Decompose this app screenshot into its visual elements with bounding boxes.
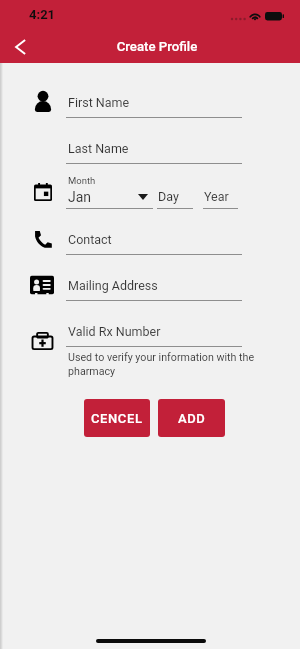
staticText: Create Profile [7,39,300,54]
staticText: Year [204,189,229,204]
staticText: Last Name [68,141,129,156]
button[interactable]: ADD [158,399,225,437]
button[interactable]: Last Name [66,141,242,165]
button[interactable]: Jan [66,189,153,210]
staticText: CENCEL [91,411,143,426]
staticText: ADD [178,411,206,426]
button[interactable]: Valid Rx Number [66,324,242,348]
staticText: Used to verify your information with the… [68,351,260,378]
staticText: Day [158,189,179,204]
button[interactable]: First Name [66,95,242,119]
staticText: First Name [68,95,130,110]
staticText: Mailing Address [68,278,158,293]
button[interactable]: Mailing Address [66,278,242,302]
button[interactable]: Back [1,32,39,62]
staticText: Month [68,175,96,186]
button[interactable]: Contact [66,232,242,256]
staticText: 4:21 [29,7,56,22]
button[interactable]: Year [203,189,238,210]
staticText: Valid Rx Number [68,324,161,339]
button[interactable]: CENCEL [84,399,150,437]
staticText: Jan [68,189,92,205]
button[interactable]: Day [157,189,193,210]
staticText: Contact [68,232,112,247]
